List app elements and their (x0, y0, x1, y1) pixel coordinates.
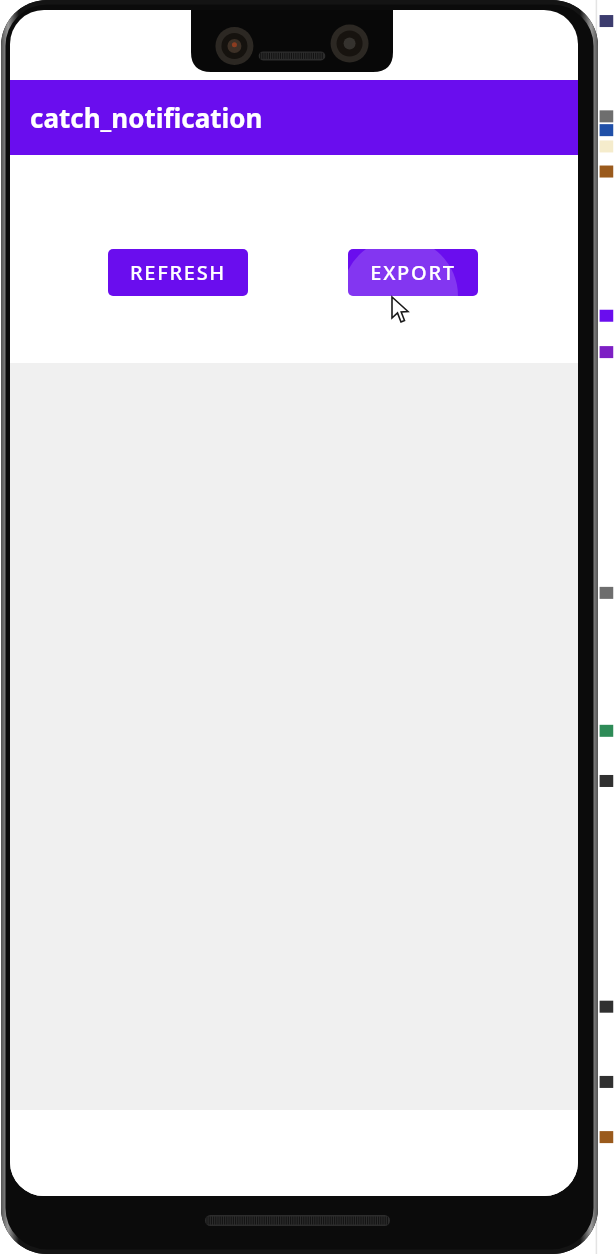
button[interactable]: REFRESH (108, 249, 248, 296)
staticText: catch_notification (30, 100, 263, 135)
staticText: REFRESH (130, 259, 226, 286)
button[interactable]: EXPORT (348, 249, 478, 296)
staticText: EXPORT (370, 259, 456, 286)
